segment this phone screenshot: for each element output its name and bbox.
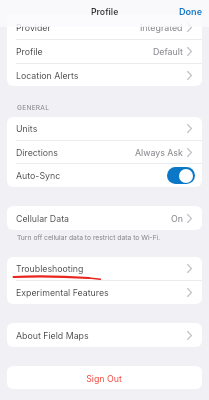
button[interactable]: Cellular Data	[7, 206, 202, 230]
staticText: Integrated	[140, 22, 183, 33]
staticText: Auto-Sync	[16, 170, 61, 181]
button[interactable]: Profile	[7, 40, 202, 63]
staticText: Profile	[16, 46, 43, 57]
staticText: Cellular Data	[16, 213, 70, 224]
staticText: Done	[179, 6, 203, 17]
staticText: Turn off cellular data to restrict data …	[17, 233, 161, 241]
button[interactable]: Units	[7, 117, 202, 140]
staticText: GENERAL	[17, 104, 50, 112]
button[interactable]: Location Alerts	[7, 64, 202, 86]
staticText: Troubleshooting	[16, 263, 84, 274]
staticText: Always Ask	[135, 147, 183, 158]
staticText: About Field Maps	[16, 330, 89, 341]
button[interactable]: Provider	[7, 15, 202, 39]
staticText: Experimental Features	[16, 287, 109, 298]
button[interactable]: Troubleshooting	[7, 257, 202, 280]
button[interactable]: Done	[171, 3, 209, 20]
staticText: Default	[153, 46, 183, 57]
staticText: Provider	[16, 22, 51, 33]
button[interactable]: Auto-Sync toggle	[167, 167, 195, 184]
staticText: Sign Out	[86, 373, 122, 384]
button[interactable]: Experimental Features	[7, 281, 202, 304]
button[interactable]: Directions	[7, 141, 202, 163]
staticText: Units	[16, 123, 38, 134]
staticText: Profile	[91, 7, 119, 18]
staticText: On	[171, 213, 183, 224]
staticText: Directions	[16, 147, 58, 158]
button[interactable]: About Field Maps	[7, 323, 202, 347]
staticText: Location Alerts	[16, 70, 79, 81]
button[interactable]: Auto-Sync	[7, 164, 202, 187]
button[interactable]: Sign Out	[7, 366, 202, 389]
